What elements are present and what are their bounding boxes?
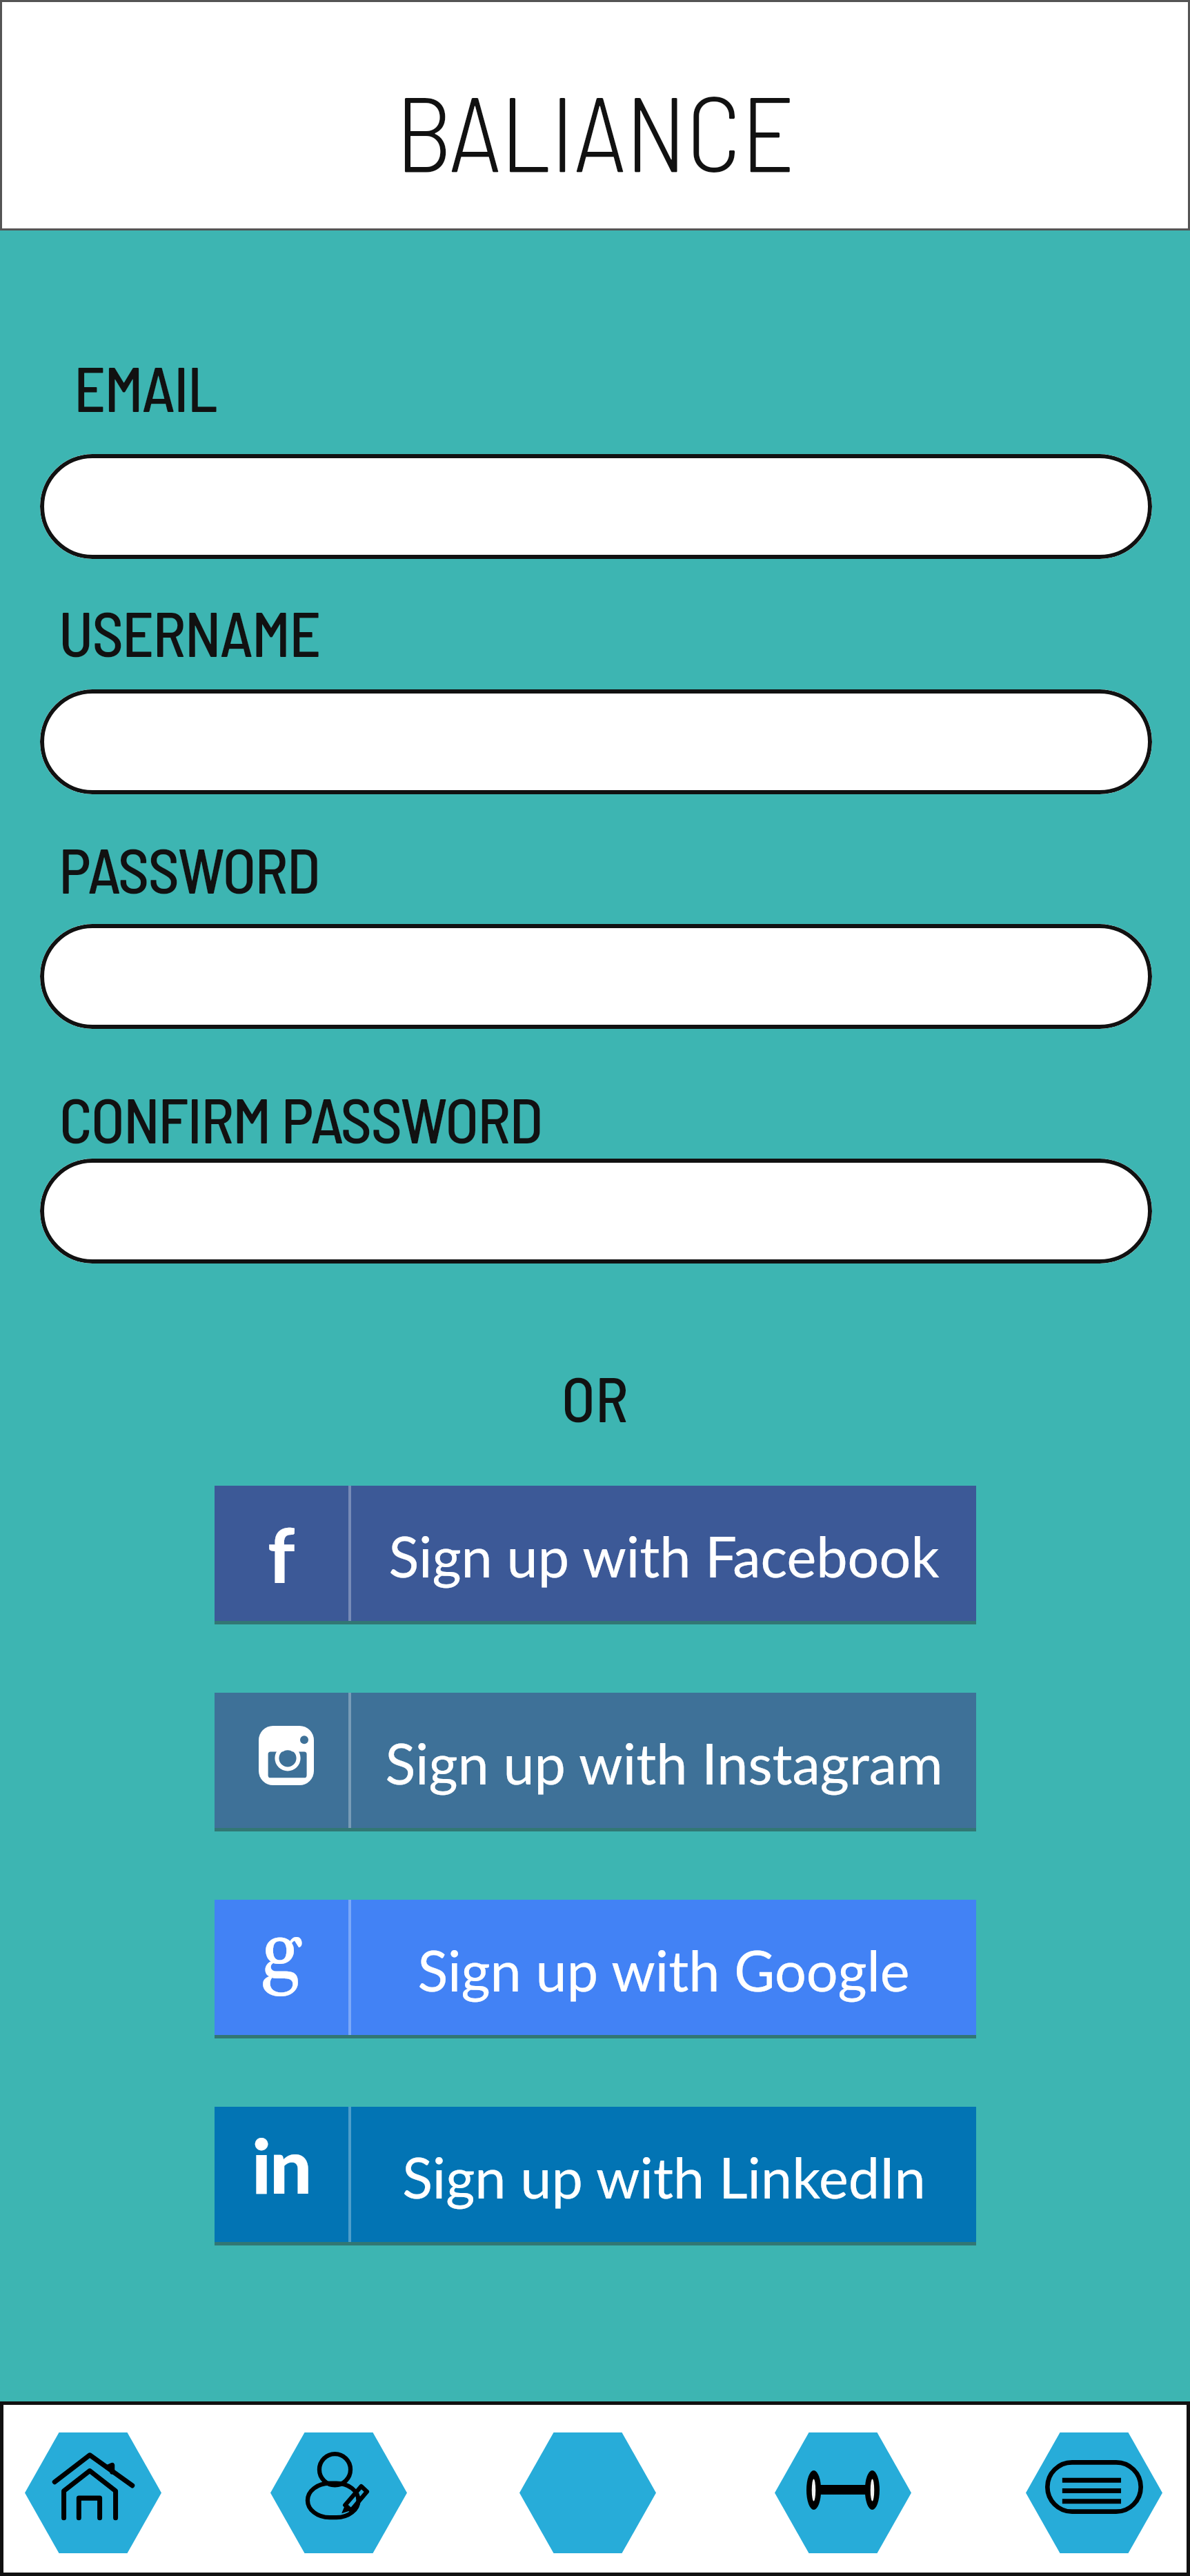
staticText: g xyxy=(261,1903,302,2005)
staticText: in xyxy=(252,2120,311,2210)
button[interactable]: in xyxy=(215,2107,976,2242)
staticText: PASSWORD xyxy=(59,832,319,906)
staticText: USERNAME xyxy=(59,595,320,669)
staticText: Sign up with Facebook xyxy=(388,1522,940,1589)
button[interactable]: g xyxy=(215,1900,976,2035)
staticText: Sign up with LinkedIn xyxy=(402,2143,926,2210)
button[interactable]: Edit profile xyxy=(270,2432,407,2553)
staticText: EMAIL xyxy=(74,350,217,424)
button[interactable]: Workouts xyxy=(775,2432,911,2553)
staticText: BALIANCE xyxy=(395,66,795,193)
button[interactable] xyxy=(40,924,1152,1029)
button[interactable]: Menu xyxy=(1026,2432,1162,2553)
button[interactable] xyxy=(40,454,1152,559)
staticText: OR xyxy=(562,1360,628,1435)
staticText: CONFIRM PASSWORD xyxy=(59,1081,542,1156)
button[interactable] xyxy=(40,1159,1152,1264)
button[interactable]: f xyxy=(215,1486,976,1621)
button[interactable]: Sign up with Instagram xyxy=(215,1693,976,1828)
staticText: f xyxy=(268,1508,295,1599)
staticText: Sign up with Instagram xyxy=(385,1729,943,1796)
button[interactable] xyxy=(40,689,1152,794)
staticText: Sign up with Google xyxy=(417,1936,910,2003)
button[interactable]: Home xyxy=(25,2432,161,2553)
button[interactable]: Add xyxy=(519,2432,656,2553)
